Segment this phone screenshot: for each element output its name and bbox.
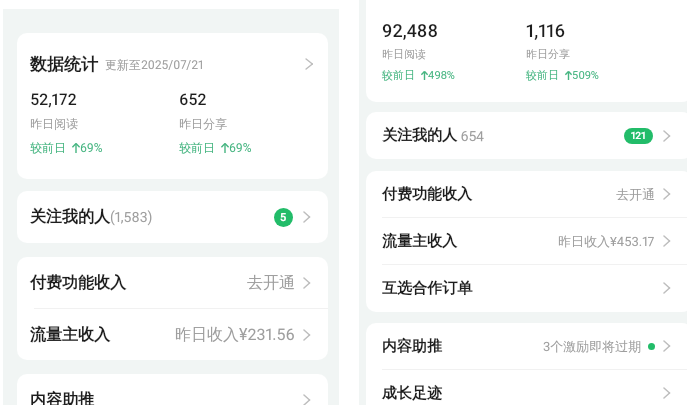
- staticText: 498%: [428, 69, 455, 82]
- staticText: 去开通: [616, 186, 655, 202]
- staticText: 关注我的人: [30, 207, 110, 227]
- staticText: 509%: [572, 69, 599, 82]
- staticText: 数据统计: [30, 54, 98, 75]
- staticText: 69%: [80, 141, 103, 155]
- staticText: 昨日阅读: [30, 116, 78, 131]
- staticText: 较前日: [526, 68, 562, 82]
- staticText: 昨日阅读: [382, 47, 426, 61]
- staticText: 昨日收入¥453.17: [558, 233, 655, 249]
- staticText: (1,583): [110, 209, 153, 225]
- button[interactable]: 付费功能收入: [366, 171, 687, 217]
- staticText: 5: [280, 211, 287, 224]
- staticText: 121: [631, 130, 646, 142]
- staticText: 较前日: [179, 140, 218, 155]
- staticText: 付费功能收入: [30, 273, 126, 293]
- button[interactable]: 流量主收入: [366, 218, 687, 264]
- button[interactable]: 内容助推: [366, 323, 687, 369]
- staticText: 关注我的人: [382, 126, 457, 145]
- staticText: 成长足迹: [382, 384, 442, 403]
- button[interactable]: 付费功能收入: [17, 257, 328, 308]
- staticText: 3个激励即将过期: [543, 338, 642, 354]
- staticText: 52,172: [30, 90, 77, 109]
- staticText: 流量主收入: [382, 232, 457, 251]
- staticText: 92,488: [382, 20, 438, 41]
- button[interactable]: 互选合作订单: [366, 265, 687, 311]
- staticText: 内容助推: [30, 390, 94, 405]
- staticText: 1,116: [526, 20, 565, 41]
- staticText: 付费功能收入: [382, 185, 472, 204]
- button[interactable]: 关注我的人: [366, 112, 687, 159]
- button[interactable]: 流量主收入: [17, 309, 328, 360]
- button[interactable]: 内容助推: [17, 374, 328, 405]
- staticText: 较前日: [382, 68, 418, 82]
- staticText: 去开通: [247, 273, 295, 293]
- staticText: 流量主收入: [30, 325, 110, 345]
- staticText: 内容助推: [382, 337, 442, 356]
- staticText: 654: [457, 128, 485, 144]
- staticText: 较前日: [30, 140, 69, 155]
- button[interactable]: 成长足迹: [366, 370, 687, 405]
- staticText: 昨日收入¥231.56: [175, 325, 295, 345]
- staticText: 互选合作订单: [382, 279, 472, 298]
- staticText: 69%: [229, 141, 252, 155]
- staticText: 652: [179, 90, 207, 109]
- staticText: 更新至2025/07/21: [105, 57, 204, 72]
- staticText: 昨日分享: [526, 47, 570, 61]
- button[interactable]: 关注我的人: [17, 191, 328, 243]
- staticText: 昨日分享: [179, 116, 227, 131]
- button[interactable]: 数据统计: [17, 51, 328, 77]
